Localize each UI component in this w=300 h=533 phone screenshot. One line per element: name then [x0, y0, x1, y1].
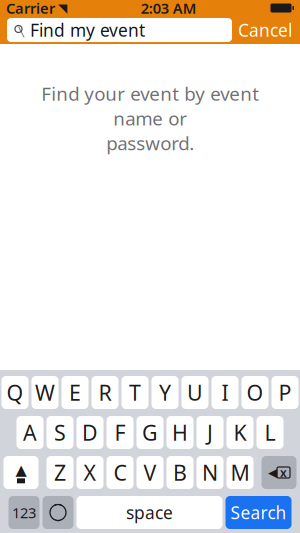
staticText: D	[82, 418, 98, 447]
staticText: F	[114, 418, 125, 447]
button[interactable]: U	[181, 376, 208, 409]
staticText: H	[172, 418, 188, 447]
button[interactable]: Y	[151, 376, 178, 409]
button[interactable]: T	[121, 376, 148, 409]
button[interactable]: R	[91, 376, 118, 409]
button[interactable]: X	[76, 456, 103, 489]
button[interactable]: L	[256, 416, 283, 449]
button[interactable]: Delete	[261, 456, 296, 489]
button[interactable]: space	[76, 496, 222, 529]
button[interactable]: K	[226, 416, 253, 449]
button[interactable]: Shift	[3, 456, 38, 489]
staticText: O	[246, 378, 263, 407]
button[interactable]: B	[166, 456, 193, 489]
staticText: S	[54, 418, 66, 447]
staticText: M	[230, 458, 249, 487]
staticText: Q	[6, 378, 23, 407]
staticText: R	[98, 378, 111, 407]
button[interactable]: P	[271, 376, 298, 409]
button[interactable]: N	[196, 456, 223, 489]
staticText: space	[126, 501, 173, 524]
button[interactable]: M	[226, 456, 253, 489]
button[interactable]: O	[241, 376, 268, 409]
staticText: Cancel	[238, 18, 292, 41]
staticText: Search	[230, 501, 286, 524]
staticText: ▲	[15, 462, 26, 478]
staticText: N	[202, 458, 218, 487]
button[interactable]: G	[136, 416, 163, 449]
button[interactable]: D	[76, 416, 103, 449]
staticText: 2:03 AM	[141, 0, 197, 18]
button[interactable]: S	[46, 416, 73, 449]
button[interactable]: W	[31, 376, 58, 409]
staticText: P	[278, 378, 291, 407]
staticText: ◀	[268, 466, 277, 479]
staticText: E	[69, 378, 81, 407]
staticText: A	[23, 418, 37, 447]
staticText: L	[264, 418, 275, 447]
button[interactable]: J	[196, 416, 223, 449]
staticText: ‿	[55, 507, 61, 521]
button[interactable]: Search	[225, 496, 291, 529]
staticText: G	[142, 418, 158, 447]
staticText: Find my event	[30, 18, 145, 41]
staticText: W	[35, 378, 55, 407]
staticText: C	[113, 458, 126, 487]
button[interactable]: Z	[46, 456, 73, 489]
staticText: U	[187, 378, 203, 407]
staticText: V	[143, 458, 156, 487]
staticText: Carrier	[6, 0, 55, 18]
staticText: x	[280, 464, 287, 480]
staticText: I	[221, 378, 228, 407]
staticText: Y	[159, 378, 171, 407]
button[interactable]: H	[166, 416, 193, 449]
button[interactable]: V	[136, 456, 163, 489]
button[interactable]: F	[106, 416, 133, 449]
staticText: Find your event by event name or passwor…	[41, 81, 259, 155]
button[interactable]: Cancel	[232, 16, 298, 44]
button[interactable]: I	[211, 376, 238, 409]
button[interactable]: Emoji	[42, 496, 73, 529]
staticText: B	[173, 458, 187, 487]
button[interactable]: Q	[1, 376, 28, 409]
button[interactable]: C	[106, 456, 133, 489]
staticText: ╲	[18, 27, 24, 37]
button[interactable]: 123	[8, 496, 39, 529]
staticText: K	[233, 418, 246, 447]
staticText: ◥	[58, 1, 67, 15]
button[interactable]: A	[16, 416, 43, 449]
staticText: J	[207, 418, 213, 447]
staticText: X	[83, 458, 96, 487]
button[interactable]: E	[61, 376, 88, 409]
staticText: T	[129, 378, 141, 407]
staticText: Z	[54, 458, 66, 487]
staticText: 123	[12, 503, 36, 522]
